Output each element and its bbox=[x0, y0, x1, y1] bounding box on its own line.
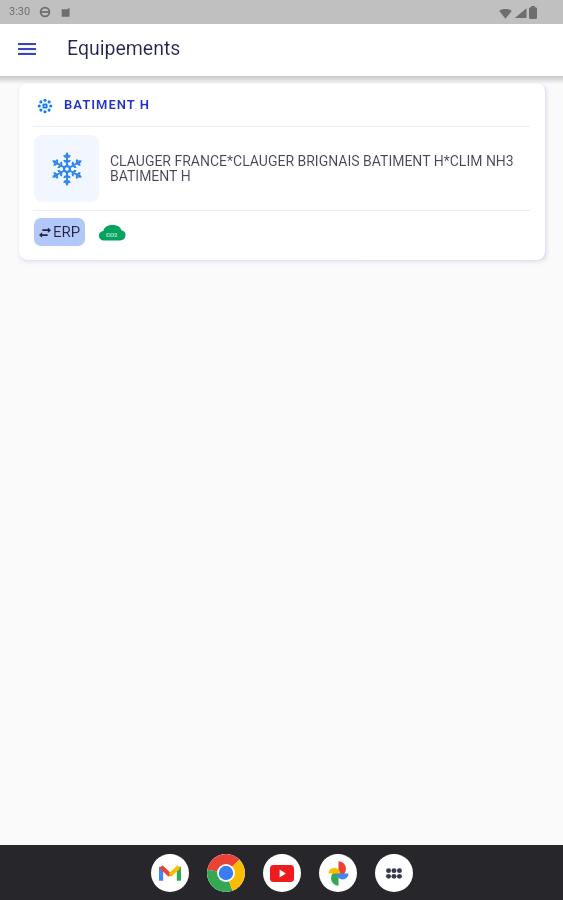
button[interactable]: Gmail bbox=[151, 854, 189, 892]
staticText: 3:30 bbox=[9, 5, 31, 18]
staticText: CO2 bbox=[106, 231, 118, 238]
staticText: ERP bbox=[53, 223, 81, 241]
staticText: CLAUGER FRANCE*CLAUGER BRIGNAIS BATIMENT… bbox=[110, 153, 525, 185]
button[interactable]: ERP bbox=[34, 218, 85, 246]
staticText: Equipements bbox=[67, 37, 181, 60]
button[interactable]: Chrome bbox=[207, 854, 245, 892]
staticText: BATIMENT H bbox=[64, 97, 150, 112]
button[interactable]: CO2 bbox=[97, 217, 126, 246]
button[interactable]: Menu bbox=[8, 30, 46, 68]
button[interactable]: Photos bbox=[319, 854, 357, 892]
button[interactable]: BATIMENT H bbox=[19, 83, 545, 260]
button[interactable]: YouTube bbox=[263, 854, 301, 892]
button[interactable]: All apps bbox=[375, 854, 413, 892]
